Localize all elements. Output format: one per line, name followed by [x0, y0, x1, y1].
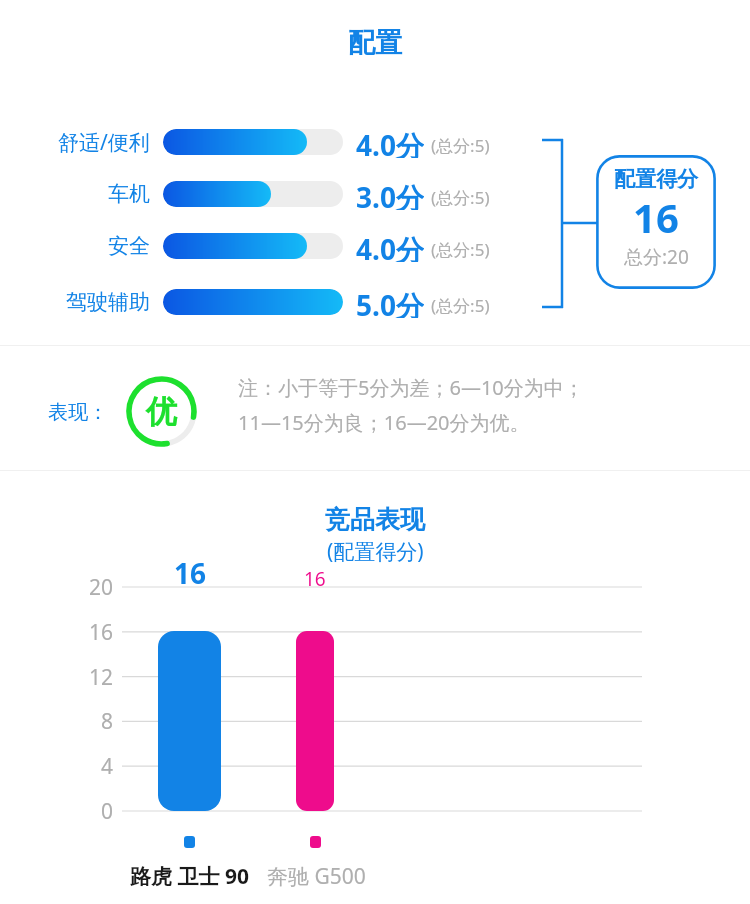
button[interactable]: 舒适/便利	[0, 126, 750, 158]
button[interactable]: 奔驰 G500	[267, 862, 366, 891]
staticText: 总分:20	[624, 244, 689, 270]
staticText: 12	[89, 663, 114, 692]
staticText: 路虎 卫士 90	[130, 862, 249, 891]
staticText: (总分:5)	[431, 134, 490, 157]
staticText: 配置	[348, 26, 402, 60]
staticText: 16	[89, 618, 114, 647]
staticText: 4	[101, 752, 114, 781]
button[interactable]: 路虎 卫士 90	[130, 862, 249, 891]
staticText: 车机	[108, 181, 150, 207]
staticText: 16	[633, 190, 679, 244]
staticText: 20	[89, 573, 114, 602]
staticText: 4.0分	[356, 230, 424, 262]
staticText: 注：小于等于5分为差；6—10分为中；	[238, 374, 584, 401]
staticText: 16	[174, 554, 207, 592]
staticText: (总分:5)	[431, 238, 490, 261]
staticText: (总分:5)	[431, 294, 490, 317]
staticText: 8	[101, 707, 114, 736]
button[interactable]: 配置得分	[596, 155, 716, 289]
staticText: 优	[146, 392, 177, 431]
staticText: 3.0分	[356, 178, 424, 210]
staticText: 舒适/便利	[58, 128, 150, 157]
staticText: 11—15分为良；16—20分为优。	[238, 409, 530, 436]
staticText: 竞品表现	[325, 504, 425, 535]
staticText: 配置得分	[614, 166, 698, 192]
staticText: 5.0分	[356, 286, 424, 318]
button[interactable]: 车机	[0, 178, 750, 210]
staticText: 驾驶辅助	[66, 289, 150, 315]
staticText: 安全	[108, 233, 150, 259]
staticText: 4.0分	[356, 126, 424, 158]
other: 表现评级 优	[124, 374, 199, 449]
staticText: (配置得分)	[327, 537, 424, 566]
staticText: 16	[304, 566, 326, 592]
staticText: 表现：	[48, 400, 108, 425]
button[interactable]: 安全	[0, 230, 750, 262]
button[interactable]: 驾驶辅助	[0, 286, 750, 318]
staticText: 奔驰 G500	[267, 862, 366, 891]
staticText: (总分:5)	[431, 186, 490, 209]
staticText: 0	[101, 797, 114, 826]
